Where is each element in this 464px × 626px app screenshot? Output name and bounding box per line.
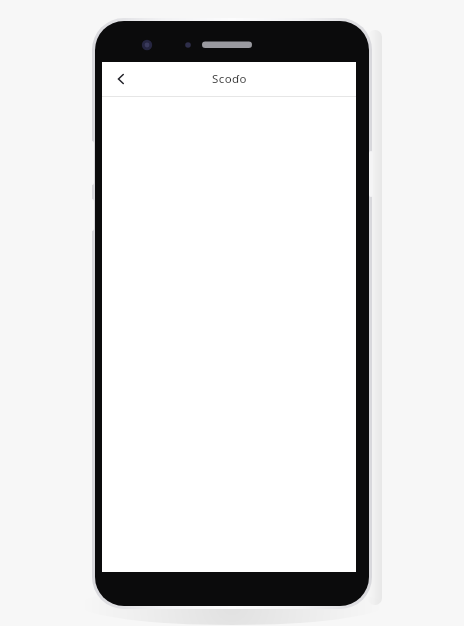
button[interactable]: Back (108, 66, 134, 92)
staticText: Scoɗo (212, 71, 247, 87)
